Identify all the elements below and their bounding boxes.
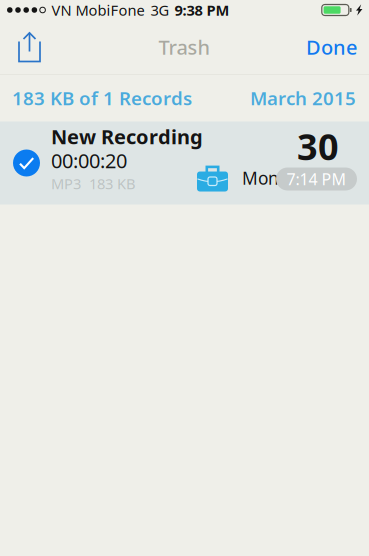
staticText: March 2015 (250, 86, 356, 110)
staticText: 183 KB of 1 Records (12, 86, 192, 110)
staticText: 30 (297, 122, 339, 170)
staticText: 00:00:20 (51, 147, 127, 174)
staticText: Done (306, 34, 357, 60)
staticText: VN MobiFone (51, 0, 144, 20)
button[interactable]: Share (0, 20, 53, 74)
staticText: New Recording (51, 123, 203, 150)
button[interactable]: New Recording (0, 121, 369, 204)
staticText: 9:38 PM (174, 0, 229, 20)
staticText: 7:14 PM (286, 168, 346, 190)
button[interactable]: Done (306, 20, 369, 74)
staticText: Trash (158, 34, 210, 60)
staticText: Mon (242, 166, 279, 189)
staticText: MP3 183 KB (51, 174, 136, 193)
staticText: 3G (150, 0, 169, 20)
